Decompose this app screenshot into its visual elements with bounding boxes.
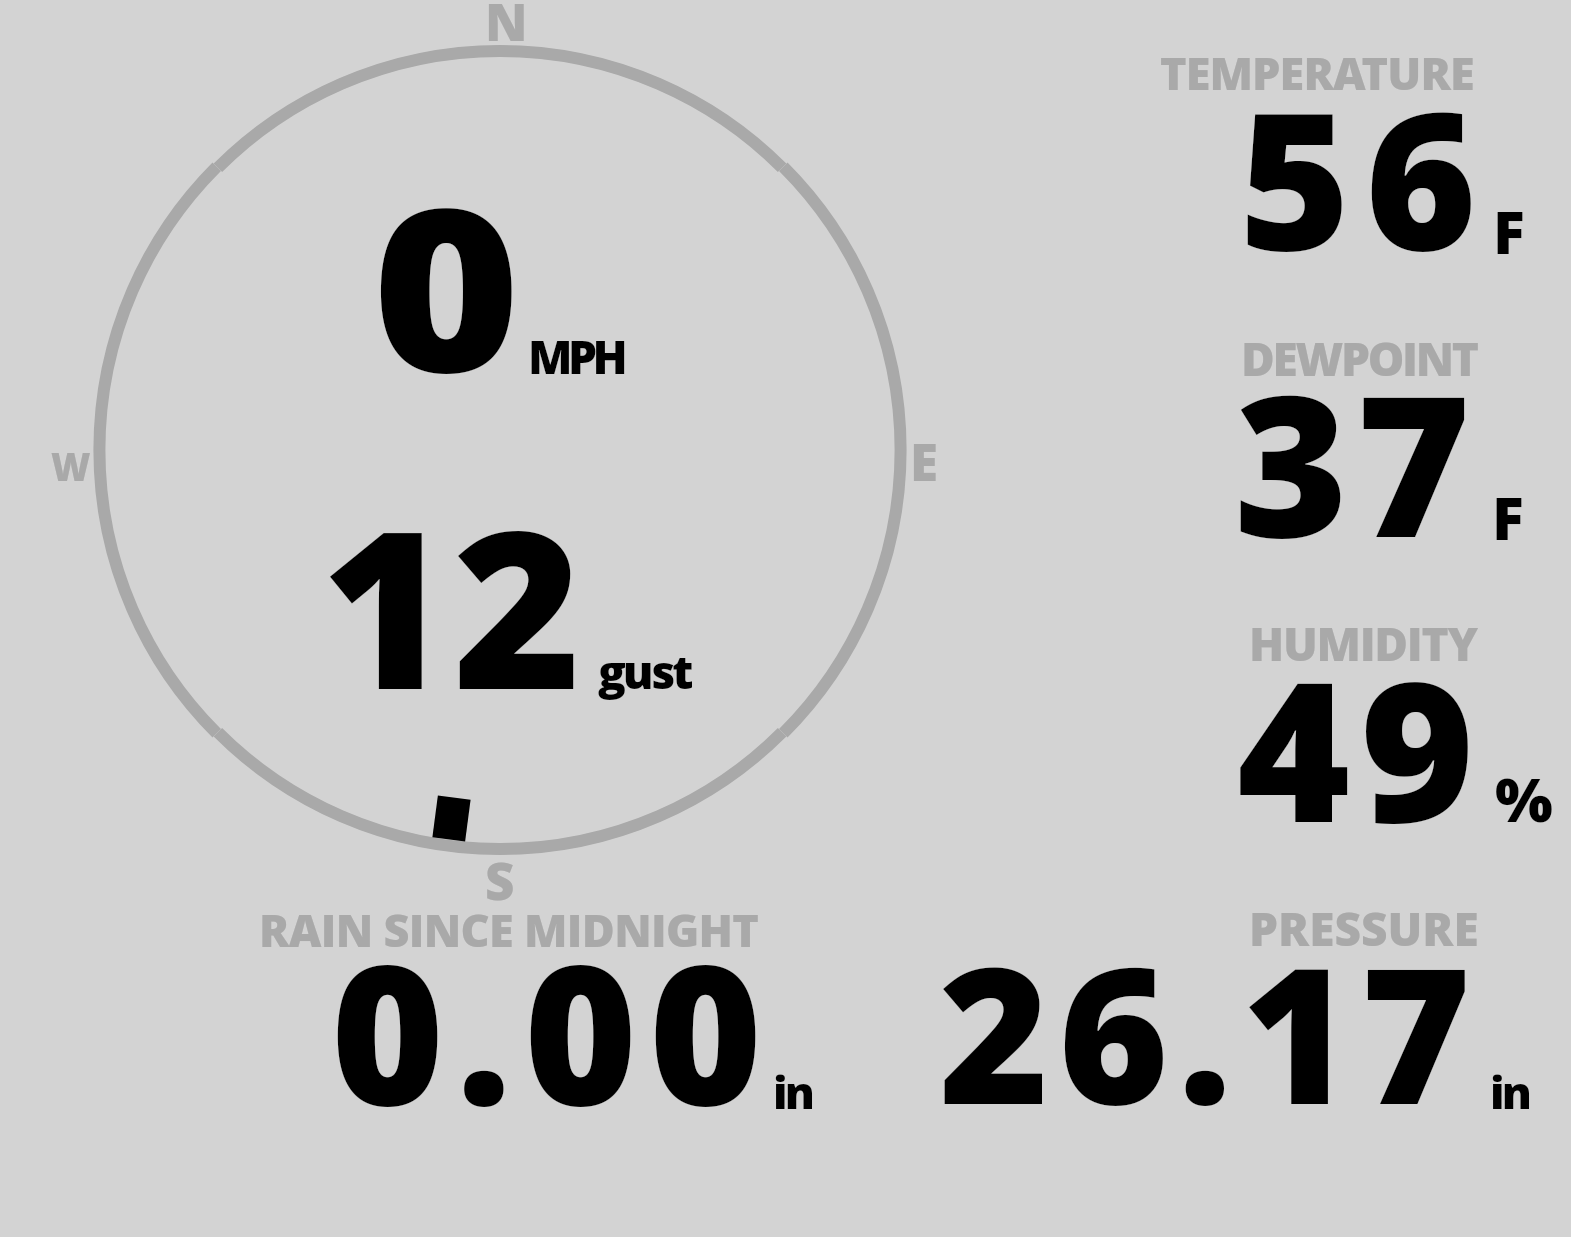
staticText: 26.17 (939, 903, 1481, 1159)
staticText: in (773, 1061, 812, 1122)
staticText: MPH (528, 325, 624, 388)
button[interactable]: Pressure 26.17 inches (900, 890, 1540, 1130)
staticText: gust (598, 640, 691, 703)
button[interactable]: Wind rose, 0 miles per hour, gusting 12 (95, 45, 905, 855)
staticText: 12 (321, 455, 586, 753)
staticText: RAIN SINCE MIDNIGHT (259, 899, 759, 960)
staticText: 0 (372, 130, 521, 438)
button[interactable]: Humidity 49 percent (1100, 600, 1571, 870)
staticText: PRESSURE (1249, 897, 1479, 960)
staticText: E (910, 426, 938, 495)
staticText: % (1495, 757, 1553, 840)
button[interactable]: Dewpoint 37 degrees Fahrenheit (1100, 315, 1571, 585)
staticText: S (485, 845, 515, 914)
staticText: HUMIDITY (1249, 612, 1477, 675)
staticText: 56 (1239, 47, 1492, 306)
staticText: N (485, 0, 528, 55)
staticText: TEMPERATURE (1160, 42, 1474, 103)
staticText: 0.00 (331, 899, 775, 1162)
button[interactable]: Rain since midnight 0.00 inches (230, 890, 830, 1130)
button[interactable]: Temperature 56 degrees Fahrenheit (1100, 30, 1571, 300)
staticText: W (51, 440, 91, 492)
staticText: F (1492, 477, 1524, 557)
staticText: 37 (1234, 329, 1479, 595)
staticText: DEWPOINT (1241, 327, 1477, 390)
staticText: in (1490, 1061, 1529, 1122)
staticText: F (1493, 191, 1525, 271)
staticText: 49 (1237, 616, 1486, 879)
